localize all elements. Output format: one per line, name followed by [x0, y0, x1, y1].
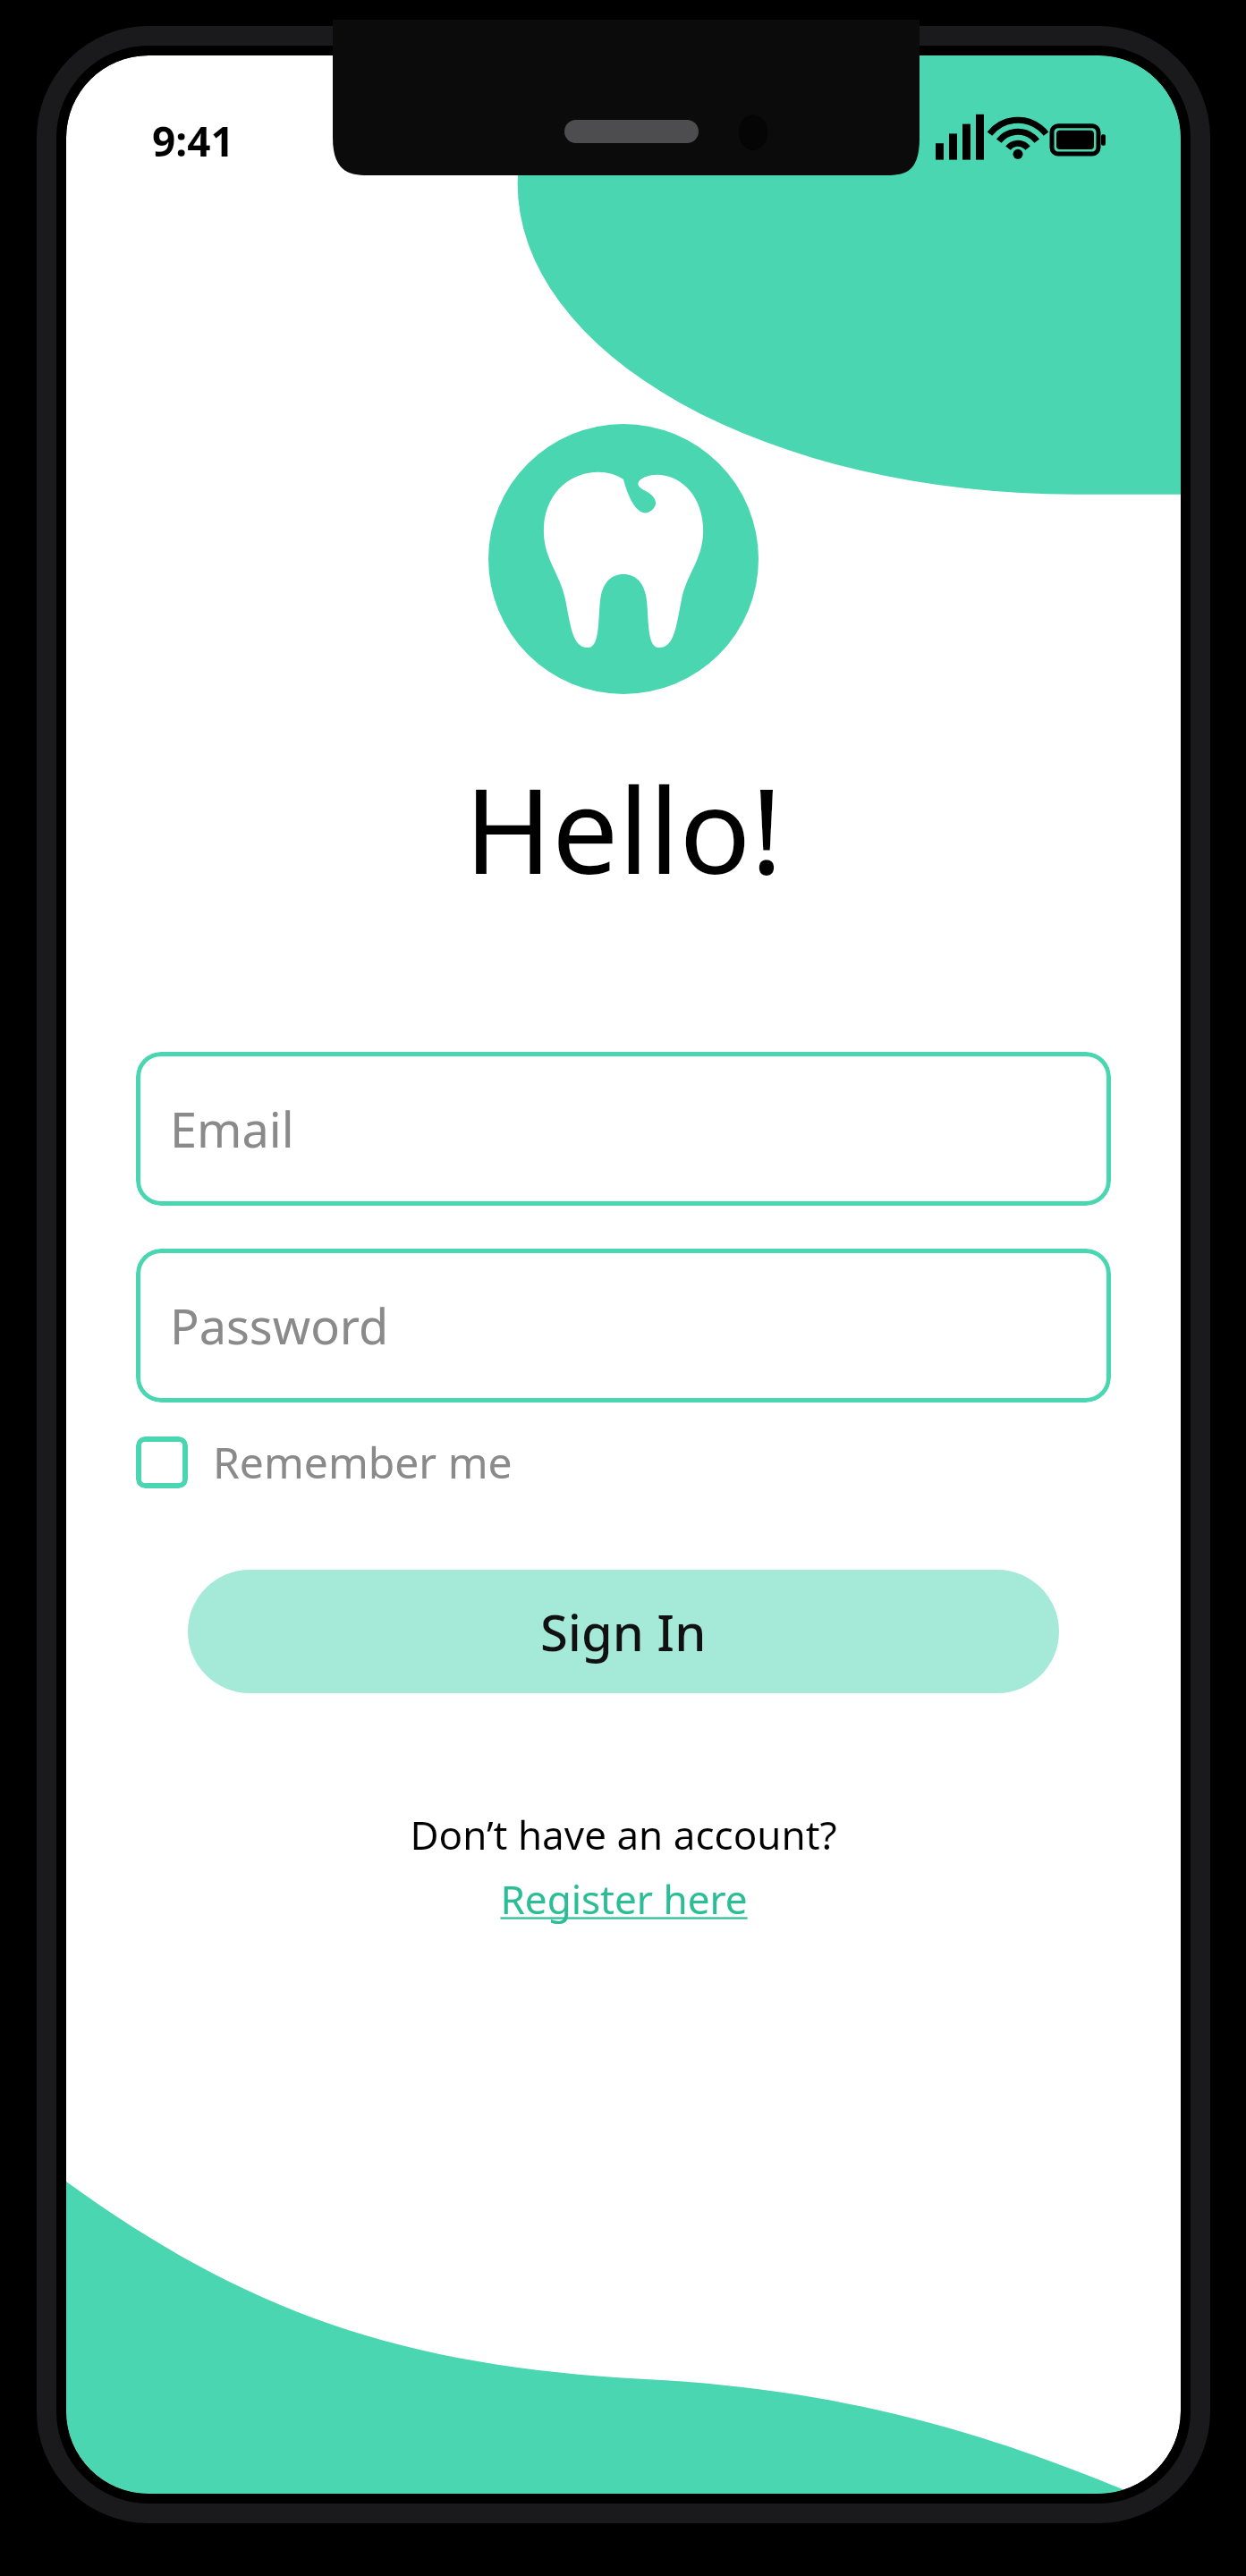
button[interactable]: Sign In [188, 1570, 1059, 1693]
staticText: Remember me [213, 1433, 513, 1491]
button[interactable]: Email [136, 1052, 1111, 1206]
staticText: Register here [500, 1872, 748, 1926]
button[interactable]: Password [136, 1249, 1111, 1402]
button[interactable]: Remember me [136, 1433, 513, 1491]
staticText: Hello! [464, 748, 783, 909]
staticText: Don’t have an account? [410, 1808, 837, 1861]
staticText: Sign In [540, 1597, 707, 1665]
staticText: Email [170, 1096, 294, 1162]
button[interactable]: Register here [500, 1872, 748, 1926]
staticText: 9:41 [152, 113, 234, 169]
staticText: Password [170, 1292, 389, 1359]
